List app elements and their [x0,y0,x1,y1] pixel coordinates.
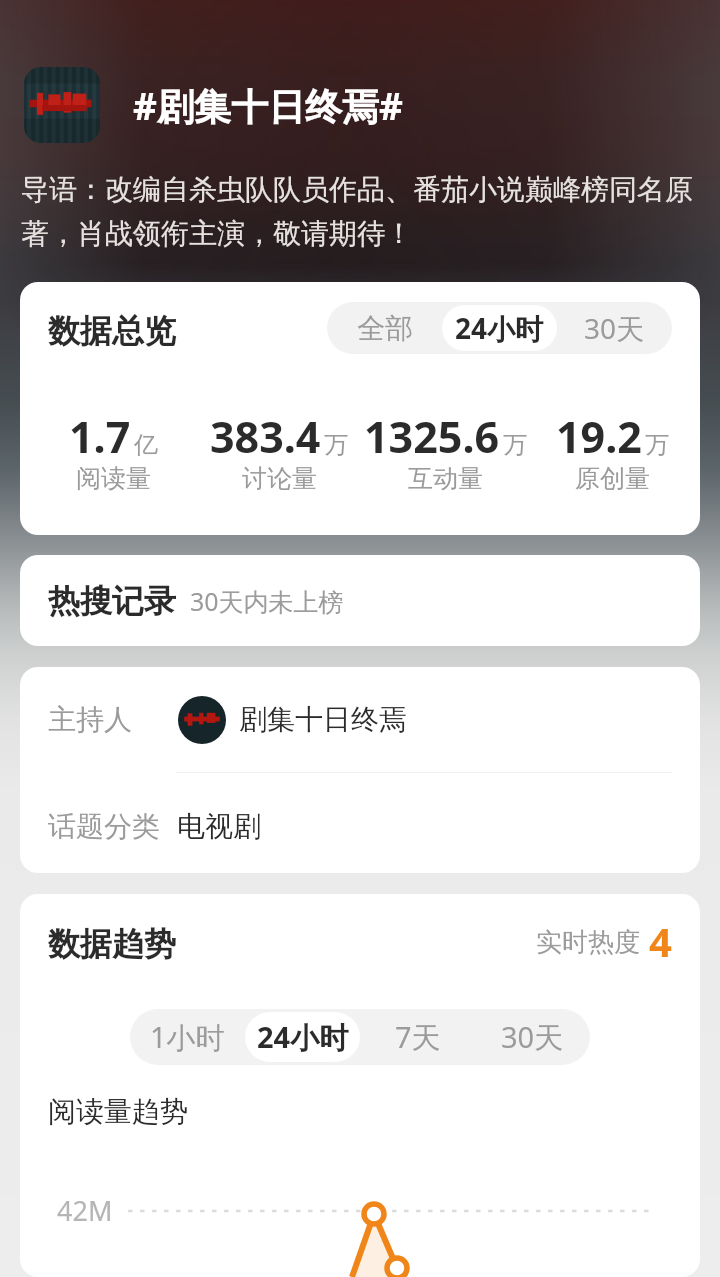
staticText: 24小时 [455,309,544,347]
staticText: 实时热度 [536,926,640,959]
staticText: 主持人 [48,702,132,737]
staticText: 讨论量 [242,463,317,494]
staticText: 数据趋势 [48,924,176,964]
button[interactable]: 主持人 [20,667,700,772]
button[interactable]: 1325.6 [362,407,529,497]
button[interactable]: 24小时 [245,1012,360,1062]
staticText: 剧集十日终焉 [239,702,407,737]
staticText: 导语：改编自杀虫队队员作品、番茄小说巅峰榜同名原著，肖战领衔主演，敬请期待！ [21,172,700,251]
staticText: 亿 [134,430,158,460]
staticText: 24小时 [257,1017,349,1057]
staticText: 1.7 [69,407,131,466]
button[interactable]: Topic poster [24,67,100,143]
staticText: 1325.6 [364,407,500,466]
staticText: 阅读量 [76,463,151,494]
button[interactable]: 话题分类 [20,773,700,873]
staticText: 热搜记录 [48,581,176,621]
staticText: 4 [649,914,672,968]
staticText: 30天 [501,1017,564,1057]
button[interactable]: 24小时 [442,305,557,351]
button[interactable]: 30天 [475,1012,590,1062]
button[interactable]: 30天 [557,305,672,351]
staticText: 万 [645,430,669,460]
staticText: 万 [324,430,348,460]
button[interactable]: 383.4 [196,407,362,497]
staticText: 全部 [357,311,413,346]
button[interactable]: 1小时 [130,1012,245,1062]
staticText: 互动量 [408,463,483,494]
staticText: 1小时 [150,1017,225,1057]
staticText: 电视剧 [177,809,261,844]
button[interactable]: 1.7 [30,407,196,497]
staticText: 19.2 [556,407,642,466]
staticText: 30天 [584,309,645,347]
staticText: 7天 [395,1017,441,1057]
staticText: 383.4 [210,407,321,466]
staticText: 原创量 [575,463,650,494]
staticText: 数据总览 [48,311,176,351]
button[interactable]: 热搜记录 [20,555,700,646]
button[interactable]: 7天 [360,1012,475,1062]
staticText: 阅读量趋势 [48,1094,188,1129]
staticText: 30天内未上榜 [190,584,344,618]
button[interactable]: 19.2 [529,407,696,497]
staticText: 万 [503,430,527,460]
button[interactable]: Host avatar [178,696,226,744]
staticText: 42M [57,1192,113,1229]
staticText: 话题分类 [48,809,160,844]
staticText: #剧集十日终焉# [133,80,403,131]
button[interactable]: 全部 [327,305,442,351]
